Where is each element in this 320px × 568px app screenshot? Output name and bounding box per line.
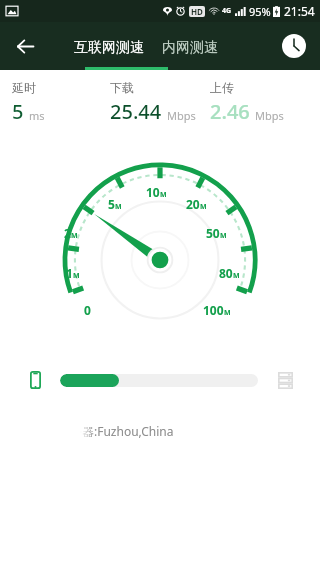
- staticText: M: [160, 190, 167, 200]
- staticText: M: [224, 308, 231, 318]
- staticText: 上传: [210, 80, 234, 95]
- button[interactable]: Device: [20, 365, 50, 395]
- staticText: M: [73, 271, 80, 281]
- staticText: 20: [186, 196, 200, 212]
- button[interactable]: 内网测速: [162, 22, 218, 70]
- staticText: 25.44: [110, 98, 162, 125]
- staticText: HD: [191, 6, 203, 17]
- button[interactable]: Back: [6, 27, 44, 65]
- staticText: M: [115, 202, 122, 212]
- button[interactable]: 互联网测速: [74, 22, 144, 70]
- staticText: 4G: [222, 6, 232, 16]
- staticText: 10: [146, 184, 160, 200]
- staticText: 服务器:Fuzhou,China Unicom: [80, 423, 218, 439]
- staticText: 80: [219, 265, 233, 281]
- staticText: 0: [84, 302, 91, 318]
- staticText: Mbps: [255, 108, 284, 123]
- staticText: 内网测速: [162, 39, 218, 57]
- staticText: 5: [108, 196, 115, 212]
- staticText: 2: [64, 225, 71, 241]
- staticText: 5: [12, 98, 24, 125]
- staticText: Mbps: [167, 108, 196, 123]
- staticText: ms: [29, 108, 45, 123]
- staticText: M: [220, 231, 227, 241]
- button[interactable]: History: [276, 28, 312, 64]
- button[interactable]: Server: [270, 365, 300, 395]
- staticText: 下载: [110, 80, 134, 95]
- staticText: 21:54: [284, 3, 315, 19]
- staticText: 延时: [12, 80, 36, 95]
- staticText: 50: [206, 225, 220, 241]
- button[interactable]: 服务器:Fuzhou,China Unicom: [0, 422, 320, 446]
- staticText: M: [233, 271, 240, 281]
- staticText: 100: [203, 302, 224, 318]
- staticText: M: [71, 231, 78, 241]
- staticText: 95%: [249, 4, 271, 19]
- staticText: 互联网测速: [74, 39, 144, 57]
- staticText: 2.46: [210, 98, 250, 125]
- staticText: 1: [66, 265, 73, 281]
- staticText: M: [200, 202, 207, 212]
